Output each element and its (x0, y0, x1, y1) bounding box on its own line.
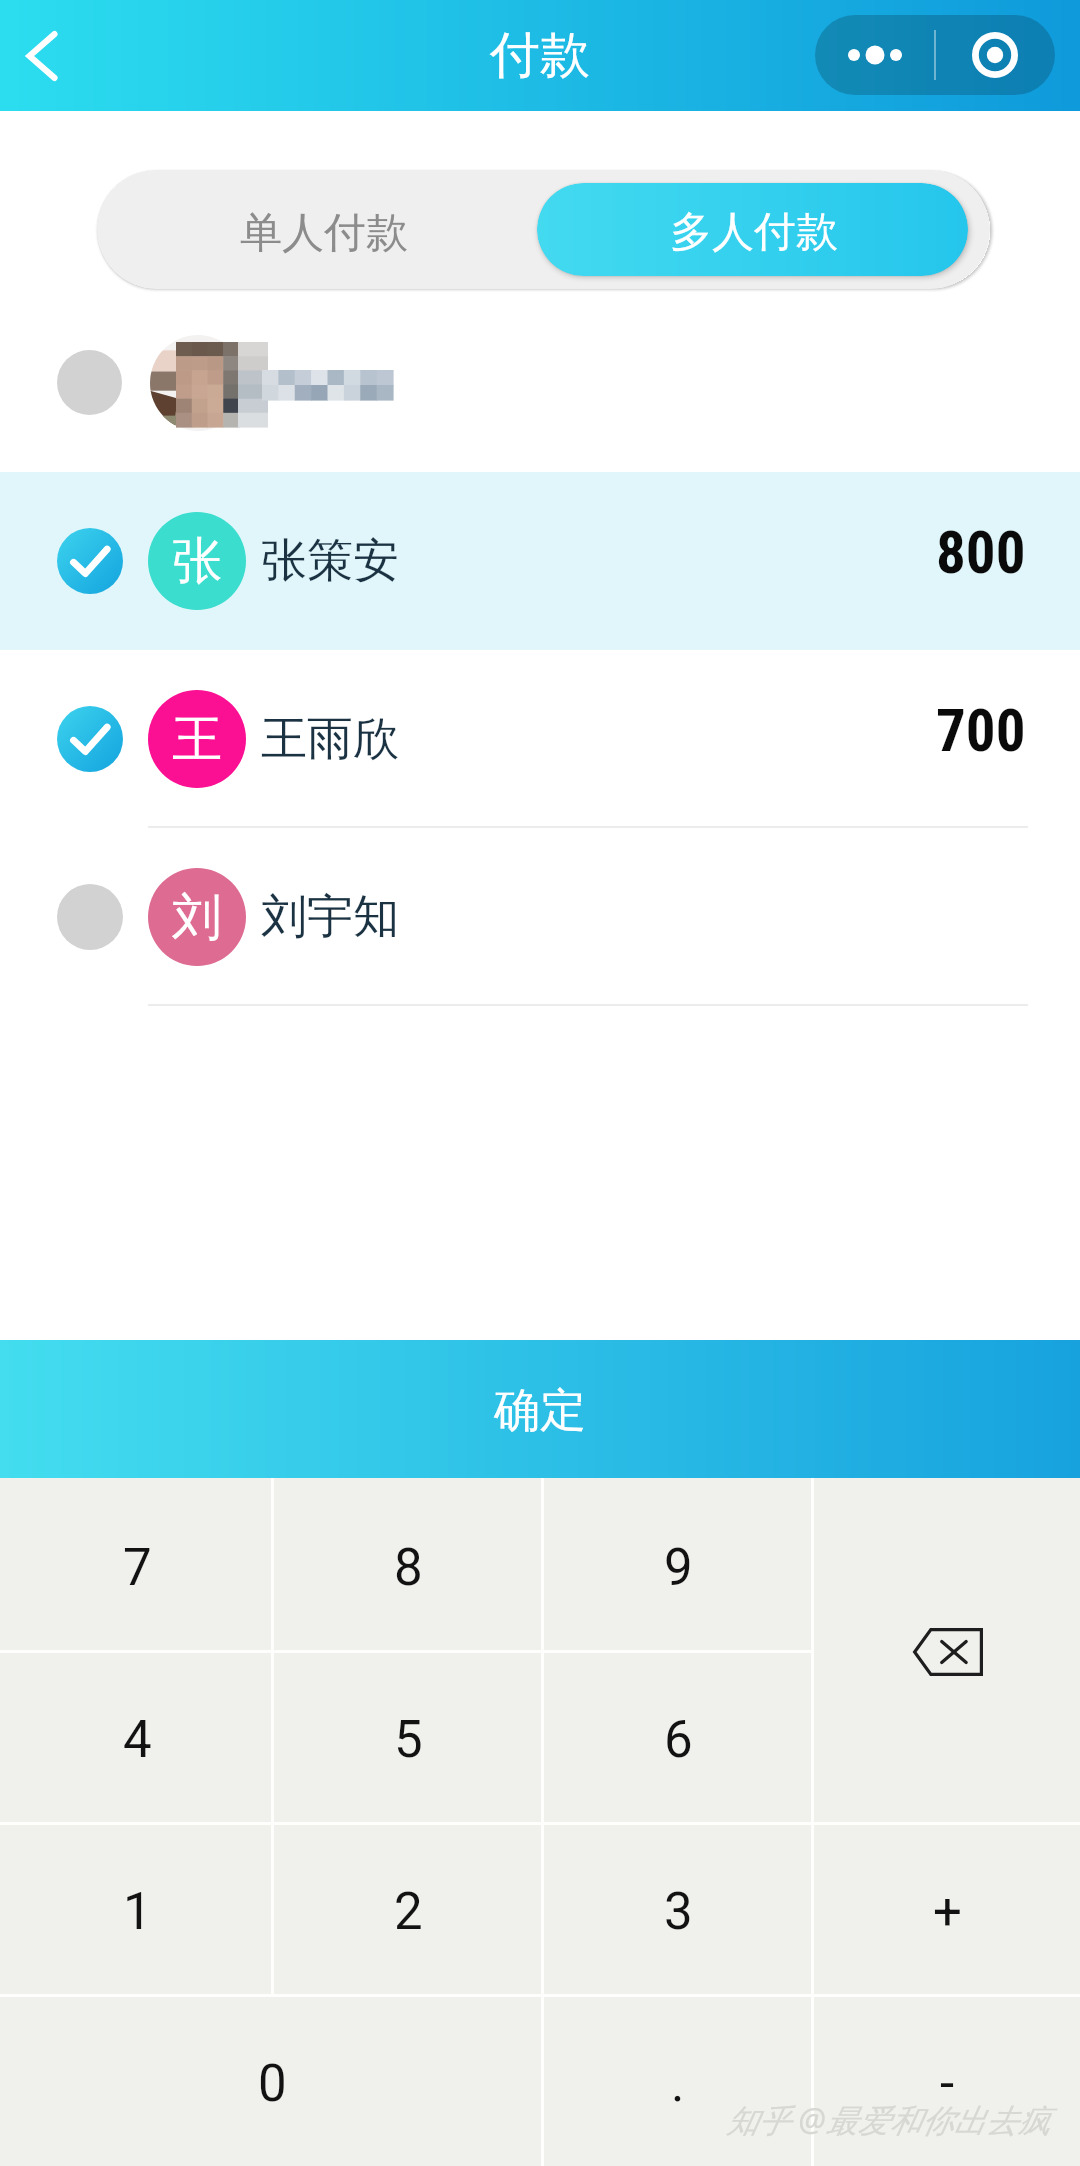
button[interactable]: 4 (0, 1650, 271, 1822)
staticText: 确定 (494, 1382, 586, 1440)
staticText: - (940, 2054, 955, 2114)
staticText: 知乎 @最爱和你出去疯 (726, 2098, 1050, 2142)
staticText: 3 (664, 1882, 693, 1942)
staticText: 6 (664, 1710, 693, 1770)
button[interactable]: 1 (0, 1822, 271, 1994)
staticText: 刘宇知 (261, 888, 399, 946)
button[interactable]: Backspace (811, 1478, 1080, 1822)
staticText: 张策安 (261, 532, 399, 590)
staticText: 9 (664, 1538, 693, 1598)
button[interactable]: 多人付款 (537, 183, 968, 276)
button[interactable]: 张 (0, 472, 1080, 650)
staticText: 多人付款 (670, 206, 838, 259)
button[interactable]: 王 (0, 650, 1080, 828)
button[interactable]: - (811, 1994, 1080, 2166)
staticText: 700 (936, 696, 1026, 765)
staticText: 8 (394, 1538, 423, 1598)
staticText: 张 (172, 530, 222, 593)
button[interactable]: 6 (541, 1650, 811, 1822)
button[interactable]: Close mini program (935, 15, 1055, 95)
button[interactable]: 单人付款 (97, 170, 537, 289)
staticText: 4 (123, 1710, 152, 1770)
button[interactable]: 0 (0, 1994, 541, 2166)
staticText: 1 (123, 1882, 152, 1942)
staticText: 刘 (172, 886, 222, 949)
button[interactable]: Back (8, 14, 92, 98)
button[interactable]: More options (815, 15, 935, 95)
button[interactable]: 5 (271, 1650, 541, 1822)
button[interactable] (0, 300, 1080, 470)
button[interactable]: 9 (541, 1478, 811, 1650)
button[interactable]: 3 (541, 1822, 811, 1994)
staticText: 付款 (490, 24, 590, 87)
button[interactable]: 8 (271, 1478, 541, 1650)
staticText: 单人付款 (240, 207, 408, 260)
button[interactable]: . (541, 1994, 811, 2166)
button[interactable]: 2 (271, 1822, 541, 1994)
button[interactable]: 7 (0, 1478, 271, 1650)
staticText: 2 (394, 1882, 423, 1942)
staticText: 800 (936, 518, 1026, 587)
staticText: 0 (258, 2054, 287, 2114)
staticText: . (671, 2054, 685, 2114)
staticText: 王雨欣 (261, 710, 399, 768)
staticText: + (933, 1882, 962, 1942)
staticText: 王 (172, 708, 222, 771)
button[interactable]: 确定 (0, 1340, 1080, 1478)
button[interactable]: + (811, 1822, 1080, 1994)
staticText: 5 (394, 1710, 423, 1770)
button[interactable]: 刘 (0, 828, 1080, 1006)
staticText: 7 (123, 1538, 152, 1598)
